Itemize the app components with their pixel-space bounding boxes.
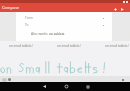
staticText: Also works: [31, 31, 49, 35]
button[interactable]: From: [25, 15, 104, 21]
staticText: Compose: [2, 5, 20, 10]
button[interactable]: Send: [119, 6, 125, 12]
staticText: From: [25, 16, 33, 20]
button[interactable]: More options: [120, 77, 125, 82]
button[interactable]: Attach: [112, 6, 118, 12]
button[interactable]: To: [25, 22, 104, 28]
button[interactable]: Home: [62, 82, 71, 91]
button[interactable]: Voice search: [7, 77, 12, 82]
button[interactable]: Also works: [31, 31, 65, 35]
button[interactable]: Keyboard: [2, 77, 7, 82]
staticText: on tablets: [49, 31, 65, 35]
staticText: To: [25, 23, 29, 27]
staticText: on email tablets !: [57, 44, 82, 48]
staticText: on email tablets !: [105, 44, 130, 48]
button[interactable]: Back: [40, 82, 49, 91]
button[interactable]: Recents: [83, 82, 92, 91]
staticText: on email tablets !: [9, 44, 34, 48]
